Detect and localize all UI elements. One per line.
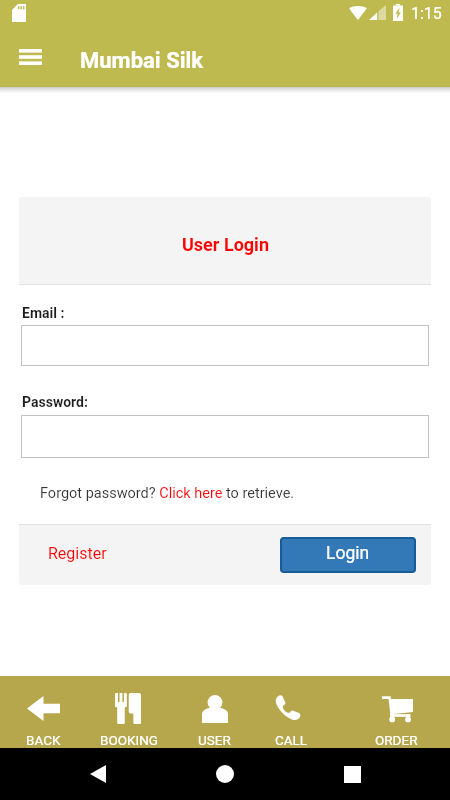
button[interactable]: BACK <box>0 676 87 748</box>
button[interactable]: Login <box>280 537 416 573</box>
button[interactable]: Register <box>48 544 107 563</box>
button[interactable]: Open navigation menu <box>8 34 52 80</box>
button[interactable]: Back <box>78 754 118 794</box>
staticText: 1:15 <box>411 4 442 23</box>
staticText: Login <box>326 543 370 564</box>
staticText: Email : <box>22 305 65 321</box>
staticText: User Login <box>182 234 269 255</box>
button[interactable]: ORDER <box>353 676 440 748</box>
button[interactable] <box>21 415 429 458</box>
staticText: BOOKING <box>100 732 158 748</box>
staticText: ORDER <box>375 732 418 748</box>
staticText: BACK <box>26 732 61 748</box>
staticText: USER <box>198 732 231 748</box>
staticText: Password: <box>22 394 88 410</box>
button[interactable]: USER <box>171 676 258 748</box>
button[interactable]: CALL <box>248 676 335 748</box>
button[interactable] <box>21 325 429 366</box>
staticText: Mumbai Silk <box>80 48 204 74</box>
button[interactable]: BOOKING <box>85 676 172 748</box>
button[interactable]: Forgot password? Click here to retrieve. <box>40 485 295 502</box>
staticText: CALL <box>275 732 308 748</box>
button[interactable]: Home <box>205 754 245 794</box>
button[interactable]: Recent apps <box>332 754 372 794</box>
